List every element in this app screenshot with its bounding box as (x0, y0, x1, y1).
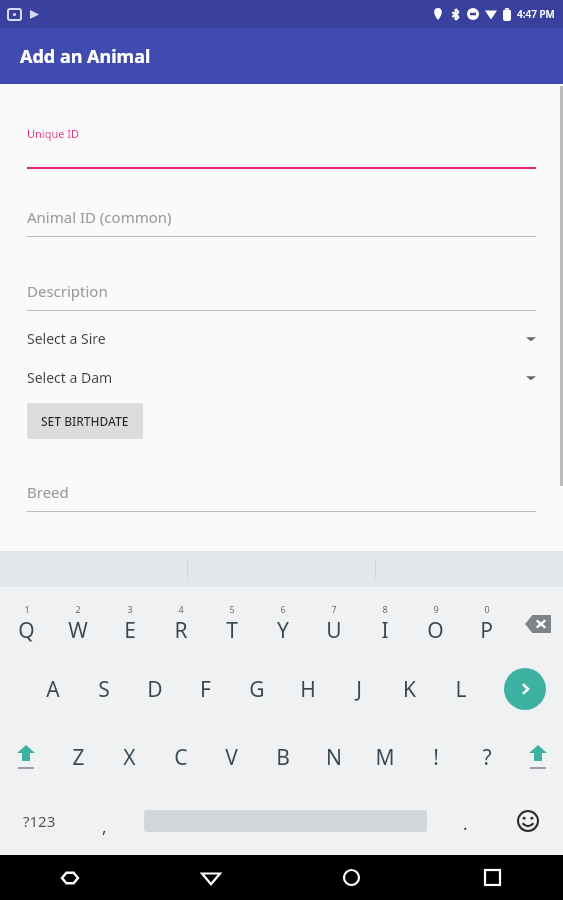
button[interactable]: A (27, 655, 78, 723)
staticText: Select a Dam (27, 368, 526, 387)
staticText: Y (277, 616, 289, 645)
button[interactable]: G (231, 655, 282, 723)
button[interactable]: Home (281, 855, 422, 900)
button[interactable]: Backspace (512, 592, 563, 655)
button[interactable]: Z (52, 723, 104, 791)
button[interactable]: , (78, 791, 131, 851)
button[interactable]: 5 (206, 592, 257, 655)
staticText: P (480, 616, 493, 645)
staticText: 6 (280, 603, 286, 615)
button[interactable]: Select a Dam (27, 368, 536, 387)
staticText: ! (433, 743, 439, 772)
button[interactable]: 6 (257, 592, 308, 655)
button[interactable]: C (155, 723, 206, 791)
staticText: C (174, 743, 188, 772)
button[interactable]: ?123 (0, 791, 78, 851)
staticText: Animal ID (common) (27, 207, 172, 227)
button[interactable]: Space (131, 791, 439, 851)
staticText: U (326, 616, 342, 645)
button[interactable]: SET BIRTHDATE (27, 403, 143, 439)
staticText: E (124, 616, 136, 645)
button[interactable]: F (180, 655, 231, 723)
staticText: 5 (229, 603, 235, 615)
staticText: 3 (127, 603, 133, 615)
staticText: 7 (331, 603, 337, 615)
button[interactable]: L (435, 655, 486, 723)
staticText: 2 (75, 603, 81, 615)
staticText: H (300, 675, 316, 704)
button[interactable]: Shift (0, 723, 52, 791)
staticText: ?123 (23, 811, 56, 831)
button[interactable]: M (359, 723, 410, 791)
button[interactable]: 3 (104, 592, 155, 655)
staticText: J (356, 675, 362, 704)
staticText: O (427, 616, 444, 645)
button[interactable]: V (206, 723, 257, 791)
button[interactable]: N (308, 723, 359, 791)
staticText: , (102, 815, 107, 838)
staticText: 8 (382, 603, 388, 615)
button[interactable]: 8 (359, 592, 410, 655)
button[interactable]: 0 (461, 592, 512, 655)
staticText: T (226, 616, 238, 645)
staticText: Q (18, 616, 35, 645)
button[interactable]: B (257, 723, 308, 791)
button[interactable]: D (129, 655, 180, 723)
staticText: Description (27, 281, 108, 301)
button[interactable]: ? (461, 723, 512, 791)
staticText: X (123, 743, 136, 772)
button[interactable]: J (333, 655, 384, 723)
button[interactable]: 7 (308, 592, 359, 655)
staticText: 0 (484, 603, 490, 615)
staticText: Select a Sire (27, 329, 526, 348)
staticText: F (200, 675, 211, 704)
staticText: M (375, 743, 395, 772)
staticText: I (381, 616, 389, 645)
staticText: Add an Animal (20, 44, 151, 69)
staticText: R (174, 616, 188, 645)
button[interactable]: . (439, 791, 492, 851)
button[interactable]: Shift (512, 723, 563, 791)
button[interactable]: Enter (486, 655, 563, 723)
button[interactable]: ! (410, 723, 461, 791)
button[interactable]: H (282, 655, 333, 723)
button[interactable]: Animal ID (common) (27, 207, 536, 237)
staticText: N (326, 743, 342, 772)
button[interactable]: K (384, 655, 435, 723)
button[interactable]: Back (140, 855, 281, 900)
staticText: Breed (27, 482, 69, 502)
staticText: G (249, 675, 265, 704)
staticText: ? (482, 743, 492, 772)
staticText: Z (72, 743, 85, 772)
button[interactable]: Recents (422, 855, 563, 900)
staticText: 4:47 PM (517, 7, 555, 21)
staticText: D (147, 675, 163, 704)
staticText: 1 (24, 603, 30, 615)
staticText: L (455, 675, 467, 704)
button[interactable]: Emoji (492, 791, 563, 851)
staticText: S (98, 675, 110, 704)
button[interactable]: 2 (52, 592, 104, 655)
button[interactable]: S (78, 655, 129, 723)
button[interactable]: X (104, 723, 155, 791)
button[interactable]: 9 (410, 592, 461, 655)
button[interactable]: 4 (155, 592, 206, 655)
staticText: 9 (433, 603, 439, 615)
staticText: 4 (178, 603, 184, 615)
staticText: SET BIRTHDATE (41, 413, 129, 429)
button[interactable]: Description (27, 281, 536, 311)
staticText: V (225, 743, 238, 772)
staticText: B (276, 743, 290, 772)
staticText: . (463, 812, 468, 835)
staticText: K (403, 675, 416, 704)
button[interactable]: Select a Sire (27, 329, 536, 348)
button[interactable]: Keyboard switcher (0, 855, 140, 900)
button[interactable]: 1 (0, 592, 52, 655)
button[interactable]: Breed (27, 482, 536, 512)
staticText: W (68, 616, 88, 645)
staticText: Unique ID (27, 126, 80, 141)
